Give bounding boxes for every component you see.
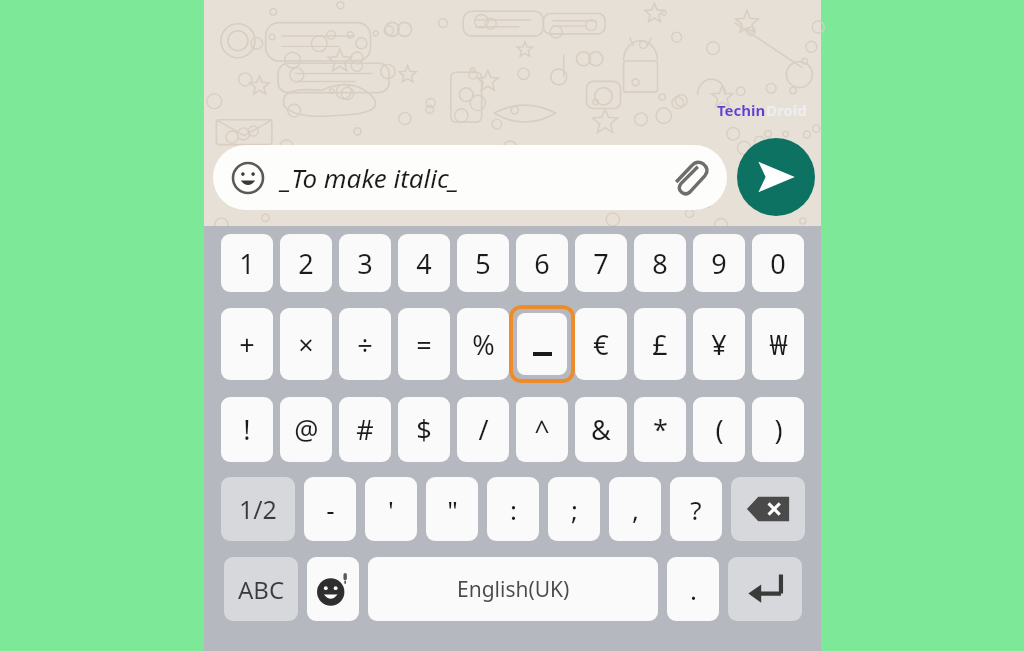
staticText: ₩ (769, 326, 788, 363)
staticText: Droid (766, 100, 807, 120)
button[interactable]: ÷ (339, 308, 391, 380)
staticText: _To make italic_ (281, 160, 460, 195)
button[interactable]: Emoji (231, 161, 265, 195)
staticText: " (447, 492, 458, 527)
staticText: % (472, 326, 495, 363)
button[interactable]: Enter (728, 557, 802, 621)
button[interactable]: 1 (221, 234, 273, 292)
staticText: Techin (717, 100, 766, 120)
button[interactable]: % (457, 308, 509, 380)
button[interactable]: 6 (516, 234, 568, 292)
button[interactable]: ₩ (752, 308, 804, 380)
button[interactable]: ¥ (693, 308, 745, 380)
staticText: / (478, 411, 489, 448)
button[interactable]: . (667, 557, 719, 621)
staticText: ÷ (357, 326, 373, 363)
staticText: 0 (770, 245, 786, 282)
staticText: , (632, 492, 639, 527)
staticText: 3 (357, 245, 373, 282)
staticText: 9 (711, 245, 727, 282)
button[interactable]: / (457, 397, 509, 462)
button[interactable]: & (575, 397, 627, 462)
button[interactable]: Send (737, 138, 815, 216)
button[interactable]: , (609, 477, 661, 541)
button[interactable]: ) (752, 397, 804, 462)
button[interactable]: ? (670, 477, 722, 541)
button[interactable]: $ (398, 397, 450, 462)
button[interactable]: English(UK) (368, 557, 658, 621)
staticText: ! (243, 411, 251, 448)
button[interactable]: 8 (634, 234, 686, 292)
button[interactable]: Emoji (213, 145, 727, 210)
staticText: 6 (534, 245, 550, 282)
button[interactable]: 7 (575, 234, 627, 292)
staticText: . (690, 572, 697, 607)
button[interactable]: 4 (398, 234, 450, 292)
button[interactable]: 9 (693, 234, 745, 292)
button[interactable]: ABC (224, 557, 298, 621)
button[interactable]: 5 (457, 234, 509, 292)
button[interactable]: " (426, 477, 478, 541)
staticText: # (356, 411, 374, 448)
staticText: ? (690, 492, 702, 527)
staticText: : (510, 492, 517, 527)
staticText: & (591, 411, 611, 448)
button[interactable]: * (634, 397, 686, 462)
button[interactable]: Backspace (731, 477, 805, 541)
staticText: 8 (652, 245, 668, 282)
button[interactable]: Attach (669, 158, 709, 198)
staticText: = (416, 326, 432, 363)
button[interactable] (509, 305, 575, 383)
staticText: English(UK) (457, 575, 570, 604)
staticText: * (653, 411, 668, 448)
button[interactable]: € (575, 308, 627, 380)
button[interactable]: ; (548, 477, 600, 541)
staticText: ; (571, 492, 578, 527)
staticText: € (593, 326, 609, 363)
button[interactable]: : (487, 477, 539, 541)
staticText: ( (715, 411, 724, 448)
button[interactable]: = (398, 308, 450, 380)
staticText: × (298, 326, 314, 363)
staticText: $ (416, 411, 432, 448)
button[interactable]: 3 (339, 234, 391, 292)
button[interactable]: + (221, 308, 273, 380)
button[interactable]: 2 (280, 234, 332, 292)
button[interactable]: ! (221, 397, 273, 462)
button[interactable]: # (339, 397, 391, 462)
button[interactable]: × (280, 308, 332, 380)
staticText: 2 (298, 245, 314, 282)
staticText: 7 (593, 245, 609, 282)
button[interactable]: @ (280, 397, 332, 462)
staticText: ' (388, 492, 394, 527)
staticText: ABC (238, 573, 285, 606)
staticText: @ (294, 411, 319, 448)
button[interactable]: ( (693, 397, 745, 462)
staticText: £ (652, 326, 668, 363)
staticText: ) (774, 411, 783, 448)
button[interactable]: ' (365, 477, 417, 541)
staticText: ¥ (711, 326, 727, 363)
staticText: 5 (475, 245, 491, 282)
staticText: 1/2 (239, 492, 277, 526)
button[interactable]: 0 (752, 234, 804, 292)
button[interactable]: Emoji and voice input (307, 557, 359, 621)
button[interactable]: £ (634, 308, 686, 380)
button[interactable]: ^ (516, 397, 568, 462)
staticText: 4 (416, 245, 432, 282)
staticText: 1 (239, 245, 255, 282)
button[interactable]: 1/2 (221, 477, 295, 541)
button[interactable]: - (304, 477, 356, 541)
staticText: ^ (534, 411, 550, 448)
staticText: - (326, 492, 335, 527)
staticText: + (239, 326, 255, 363)
